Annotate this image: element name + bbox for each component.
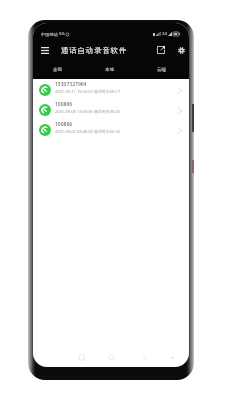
staticText: 5G xyxy=(59,31,65,37)
button[interactable]: 云端 xyxy=(135,60,187,80)
staticText: 100866 xyxy=(55,121,73,128)
button[interactable]: Recents xyxy=(76,352,86,362)
staticText: 本地 xyxy=(105,67,114,73)
button[interactable]: Home xyxy=(106,352,116,362)
button[interactable]: 全部 xyxy=(33,60,83,80)
button[interactable]: 100866 xyxy=(33,120,189,140)
staticText: 24 xyxy=(162,31,167,37)
button[interactable]: Hide keyboard xyxy=(167,352,177,362)
staticText: 云端 xyxy=(157,67,166,73)
staticText: 中国移动 xyxy=(41,32,58,37)
button[interactable]: Settings xyxy=(173,42,189,58)
button[interactable]: 15307327964 xyxy=(33,80,189,100)
button[interactable]: Open navigation menu xyxy=(37,42,53,58)
staticText: 15307327964 xyxy=(55,81,87,88)
staticText: 100866 xyxy=(55,101,73,108)
button[interactable]: Export recordings xyxy=(153,42,169,58)
staticText: 2021-09-08 13:59:46 通话时长00:25 xyxy=(55,109,121,114)
button[interactable]: Back xyxy=(139,352,149,362)
staticText: 2021-09-11 15:34:53 通话时长00:17 xyxy=(55,89,121,94)
staticText: 通话自动录音软件 xyxy=(61,46,128,55)
staticText: 全部 xyxy=(53,67,62,73)
button[interactable]: 本地 xyxy=(83,60,135,80)
button[interactable]: 100866 xyxy=(33,100,189,120)
staticText: 2021-09-02 09:48:06 通话时长00:33 xyxy=(55,129,121,134)
